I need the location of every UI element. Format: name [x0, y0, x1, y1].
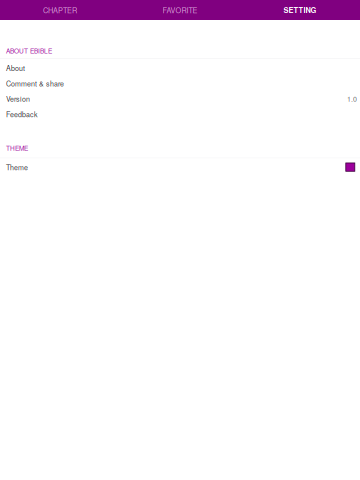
staticText: ABOUT EBIBLE	[6, 46, 52, 55]
staticText: About	[6, 63, 25, 73]
staticText: 1.0	[347, 94, 357, 104]
staticText: CHAPTER	[43, 5, 77, 15]
staticText: Feedback	[6, 109, 38, 119]
button[interactable]: Feedback	[0, 106, 360, 122]
staticText: FAVORITE	[162, 5, 197, 15]
button[interactable]: SETTING	[240, 0, 360, 20]
button[interactable]: FAVORITE	[120, 0, 240, 20]
button[interactable]: CHAPTER	[0, 0, 120, 20]
button[interactable]: Theme	[0, 159, 360, 175]
button[interactable]: About	[0, 60, 360, 76]
staticText: Version	[6, 94, 30, 104]
staticText: SETTING	[283, 5, 316, 15]
staticText: Comment & share	[6, 78, 64, 88]
button[interactable]: Comment & share	[0, 76, 360, 91]
button[interactable]: Version	[0, 91, 360, 106]
staticText: THEME	[6, 143, 28, 153]
staticText: Theme	[6, 162, 28, 172]
